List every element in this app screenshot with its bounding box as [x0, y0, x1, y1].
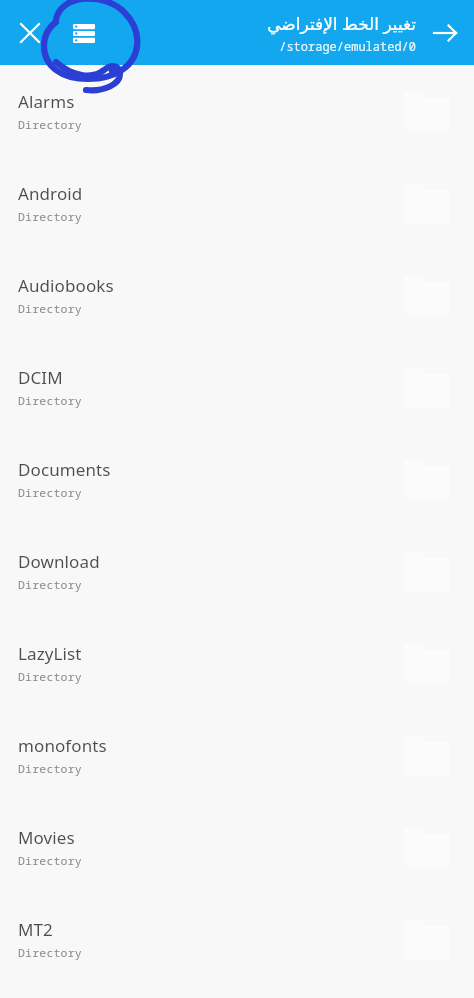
staticText: Directory	[18, 117, 82, 133]
staticText: Directory	[18, 853, 82, 869]
staticText: DCIM	[18, 366, 63, 389]
staticText: MT2	[18, 918, 53, 941]
button[interactable]: monofonts	[0, 709, 474, 801]
button[interactable]: Forward	[422, 10, 468, 56]
staticText: Audiobooks	[18, 274, 114, 297]
staticText: Download	[18, 550, 100, 573]
staticText: تغيير الخط الإفتراضي	[267, 12, 416, 35]
button[interactable]: Alarms	[0, 65, 474, 157]
button[interactable]: Download	[0, 525, 474, 617]
staticText: Directory	[18, 945, 82, 961]
staticText: Android	[18, 182, 83, 205]
staticText: Directory	[18, 301, 82, 317]
button[interactable]: Movies	[0, 801, 474, 893]
staticText: Movies	[18, 826, 75, 849]
staticText: Directory	[18, 577, 82, 593]
button[interactable]: Audiobooks	[0, 249, 474, 341]
staticText: Directory	[18, 669, 82, 685]
button[interactable]: Documents	[0, 433, 474, 525]
staticText: Documents	[18, 458, 111, 481]
button[interactable]: Android	[0, 157, 474, 249]
button[interactable]: DCIM	[0, 341, 474, 433]
staticText: Directory	[18, 761, 82, 777]
staticText: Directory	[18, 485, 82, 501]
staticText: Directory	[18, 209, 82, 225]
button[interactable]: Close	[8, 11, 52, 55]
staticText: /storage/emulated/0	[279, 38, 416, 54]
button[interactable]: LazyList	[0, 617, 474, 709]
button[interactable]: Storage	[62, 11, 106, 55]
staticText: LazyList	[18, 642, 82, 665]
staticText: monofonts	[18, 734, 107, 757]
staticText: Alarms	[18, 90, 75, 113]
staticText: Directory	[18, 393, 82, 409]
button[interactable]: MT2	[0, 893, 474, 985]
